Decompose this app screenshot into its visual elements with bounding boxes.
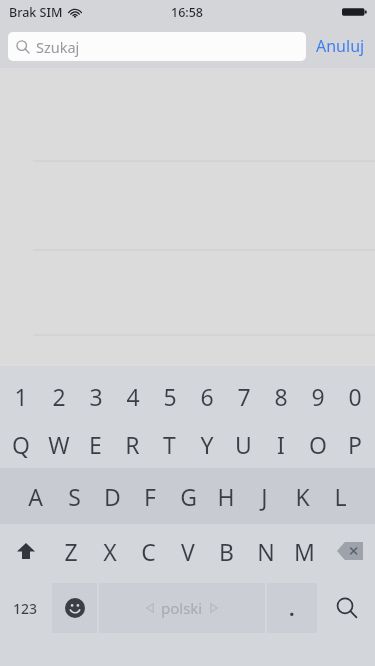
button[interactable]: F bbox=[131, 468, 169, 524]
staticText: R bbox=[125, 429, 140, 460]
staticText: . bbox=[289, 595, 295, 622]
staticText: F bbox=[144, 481, 156, 512]
staticText: L bbox=[334, 481, 347, 512]
button[interactable]: polski bbox=[99, 583, 265, 633]
staticText: P bbox=[348, 429, 362, 460]
staticText: C bbox=[141, 536, 156, 567]
staticText: 2 bbox=[52, 381, 66, 412]
staticText: Q bbox=[12, 429, 30, 460]
staticText: polski bbox=[161, 598, 203, 618]
button[interactable]: L bbox=[321, 468, 359, 524]
staticText: V bbox=[181, 536, 195, 567]
staticText: S bbox=[68, 481, 81, 512]
staticText: T bbox=[163, 429, 176, 460]
staticText: N bbox=[257, 536, 275, 567]
staticText: 5 bbox=[163, 381, 177, 412]
button[interactable]: H bbox=[207, 468, 245, 524]
button[interactable]: 5 bbox=[151, 372, 188, 420]
button[interactable]: D bbox=[93, 468, 131, 524]
button[interactable]: I bbox=[262, 420, 299, 468]
staticText: G bbox=[180, 481, 197, 512]
staticText: Szukaj bbox=[36, 37, 80, 57]
staticText: 7 bbox=[237, 381, 251, 412]
button[interactable]: Z bbox=[51, 524, 90, 578]
staticText: 16:58 bbox=[171, 4, 204, 21]
button[interactable]: K bbox=[283, 468, 321, 524]
button[interactable]: M bbox=[285, 524, 324, 578]
button[interactable]: Anuluj bbox=[306, 35, 375, 57]
staticText: X bbox=[103, 536, 117, 567]
button[interactable]: X bbox=[90, 524, 129, 578]
button[interactable]: 0 bbox=[336, 372, 373, 420]
staticText: Y bbox=[200, 429, 214, 460]
staticText: 123 bbox=[13, 599, 38, 618]
button[interactable]: Szukaj bbox=[8, 32, 306, 61]
staticText: J bbox=[261, 481, 268, 512]
staticText: Z bbox=[64, 536, 78, 567]
button[interactable]: U bbox=[225, 420, 262, 468]
staticText: O bbox=[309, 429, 327, 460]
staticText: 9 bbox=[311, 381, 325, 412]
button[interactable]: 8 bbox=[262, 372, 299, 420]
staticText: H bbox=[217, 481, 235, 512]
button[interactable]: E bbox=[77, 420, 114, 468]
button[interactable]: 4 bbox=[114, 372, 151, 420]
button[interactable]: T bbox=[151, 420, 188, 468]
staticText: 4 bbox=[126, 381, 140, 412]
staticText: 0 bbox=[348, 381, 362, 412]
staticText: U bbox=[235, 429, 252, 460]
button[interactable]: B bbox=[207, 524, 246, 578]
button[interactable]: Search bbox=[319, 583, 375, 633]
button[interactable]: W bbox=[40, 420, 77, 468]
button[interactable]: S bbox=[55, 468, 93, 524]
button[interactable]: Emoji bbox=[52, 583, 97, 633]
staticText: B bbox=[219, 536, 234, 567]
button[interactable]: Backspace bbox=[324, 524, 375, 578]
staticText: E bbox=[89, 429, 102, 460]
button[interactable]: . bbox=[267, 583, 317, 633]
button[interactable]: 7 bbox=[225, 372, 262, 420]
staticText: Brak SIM bbox=[9, 4, 63, 21]
button[interactable]: 3 bbox=[77, 372, 114, 420]
button[interactable]: 9 bbox=[299, 372, 336, 420]
staticText: A bbox=[28, 481, 43, 512]
button[interactable]: N bbox=[246, 524, 285, 578]
button[interactable]: 123 bbox=[0, 583, 50, 633]
button[interactable]: O bbox=[299, 420, 336, 468]
button[interactable]: Q bbox=[2, 420, 40, 468]
staticText: M bbox=[294, 536, 315, 567]
staticText: 1 bbox=[14, 381, 28, 412]
button[interactable]: Y bbox=[188, 420, 225, 468]
staticText: I bbox=[277, 429, 285, 460]
button[interactable]: V bbox=[168, 524, 207, 578]
button[interactable]: R bbox=[114, 420, 151, 468]
staticText: W bbox=[48, 429, 70, 460]
staticText: 6 bbox=[200, 381, 214, 412]
staticText: Anuluj bbox=[316, 35, 365, 57]
button[interactable]: P bbox=[336, 420, 373, 468]
button[interactable]: G bbox=[169, 468, 207, 524]
button[interactable]: A bbox=[16, 468, 55, 524]
staticText: K bbox=[295, 481, 310, 512]
button[interactable]: Shift bbox=[0, 524, 51, 578]
staticText: 8 bbox=[274, 381, 288, 412]
staticText: D bbox=[104, 481, 121, 512]
staticText: 3 bbox=[89, 381, 103, 412]
button[interactable]: C bbox=[129, 524, 168, 578]
button[interactable]: 1 bbox=[2, 372, 40, 420]
button[interactable]: 2 bbox=[40, 372, 77, 420]
button[interactable]: J bbox=[245, 468, 283, 524]
button[interactable]: 6 bbox=[188, 372, 225, 420]
